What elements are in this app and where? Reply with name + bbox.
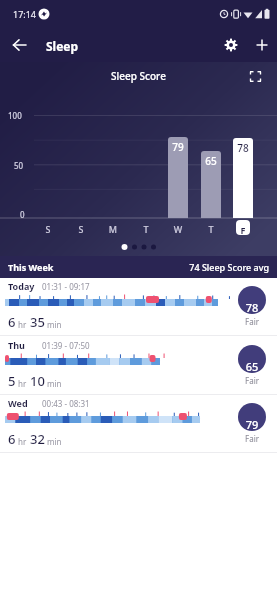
- staticText: 78: [233, 141, 253, 155]
- staticText: 6: [8, 430, 16, 448]
- staticText: hr: [18, 319, 27, 330]
- button[interactable]: Thu: [0, 337, 277, 395]
- staticText: hr: [18, 378, 27, 389]
- staticText: Fair: [238, 316, 266, 327]
- staticText: M: [103, 223, 123, 235]
- staticText: W: [168, 223, 188, 235]
- staticText: Fair: [238, 433, 266, 444]
- staticText: Fair: [238, 375, 266, 386]
- staticText: T: [201, 223, 221, 235]
- staticText: min: [47, 436, 62, 447]
- staticText: 5: [8, 372, 16, 390]
- staticText: 01:39 - 07:50: [42, 340, 132, 351]
- staticText: F: [236, 224, 250, 235]
- staticText: Thu: [8, 339, 48, 351]
- staticText: 100: [8, 110, 34, 121]
- staticText: T: [136, 223, 156, 235]
- staticText: 32: [30, 430, 45, 448]
- staticText: 35: [30, 313, 45, 331]
- staticText: This Week: [8, 261, 108, 273]
- button[interactable]: Today: [0, 278, 277, 336]
- button[interactable]: Wed: [0, 395, 277, 453]
- button[interactable]: [6, 30, 34, 60]
- button[interactable]: [240, 64, 270, 88]
- staticText: 6: [8, 313, 16, 331]
- staticText: 74 Sleep Score avg: [147, 261, 269, 273]
- staticText: Sleep Score: [0, 69, 277, 83]
- staticText: 79: [168, 140, 188, 154]
- staticText: Today: [8, 280, 48, 292]
- staticText: S: [38, 223, 58, 235]
- staticText: 65: [201, 154, 221, 168]
- staticText: hr: [18, 436, 27, 447]
- staticText: 65: [238, 359, 266, 373]
- staticText: 01:31 - 09:17: [42, 281, 132, 292]
- staticText: 78: [238, 300, 266, 314]
- staticText: S: [71, 223, 91, 235]
- staticText: Sleep: [46, 38, 106, 54]
- staticText: 10: [30, 372, 45, 390]
- staticText: 0: [20, 209, 34, 220]
- staticText: 79: [238, 417, 266, 431]
- button[interactable]: [248, 30, 276, 60]
- staticText: 00:43 - 08:31: [42, 398, 132, 409]
- button[interactable]: [218, 30, 244, 60]
- staticText: 17:14: [13, 8, 43, 20]
- staticText: min: [47, 378, 62, 389]
- staticText: min: [47, 319, 62, 330]
- staticText: Wed: [8, 397, 48, 409]
- staticText: 50: [14, 160, 34, 171]
